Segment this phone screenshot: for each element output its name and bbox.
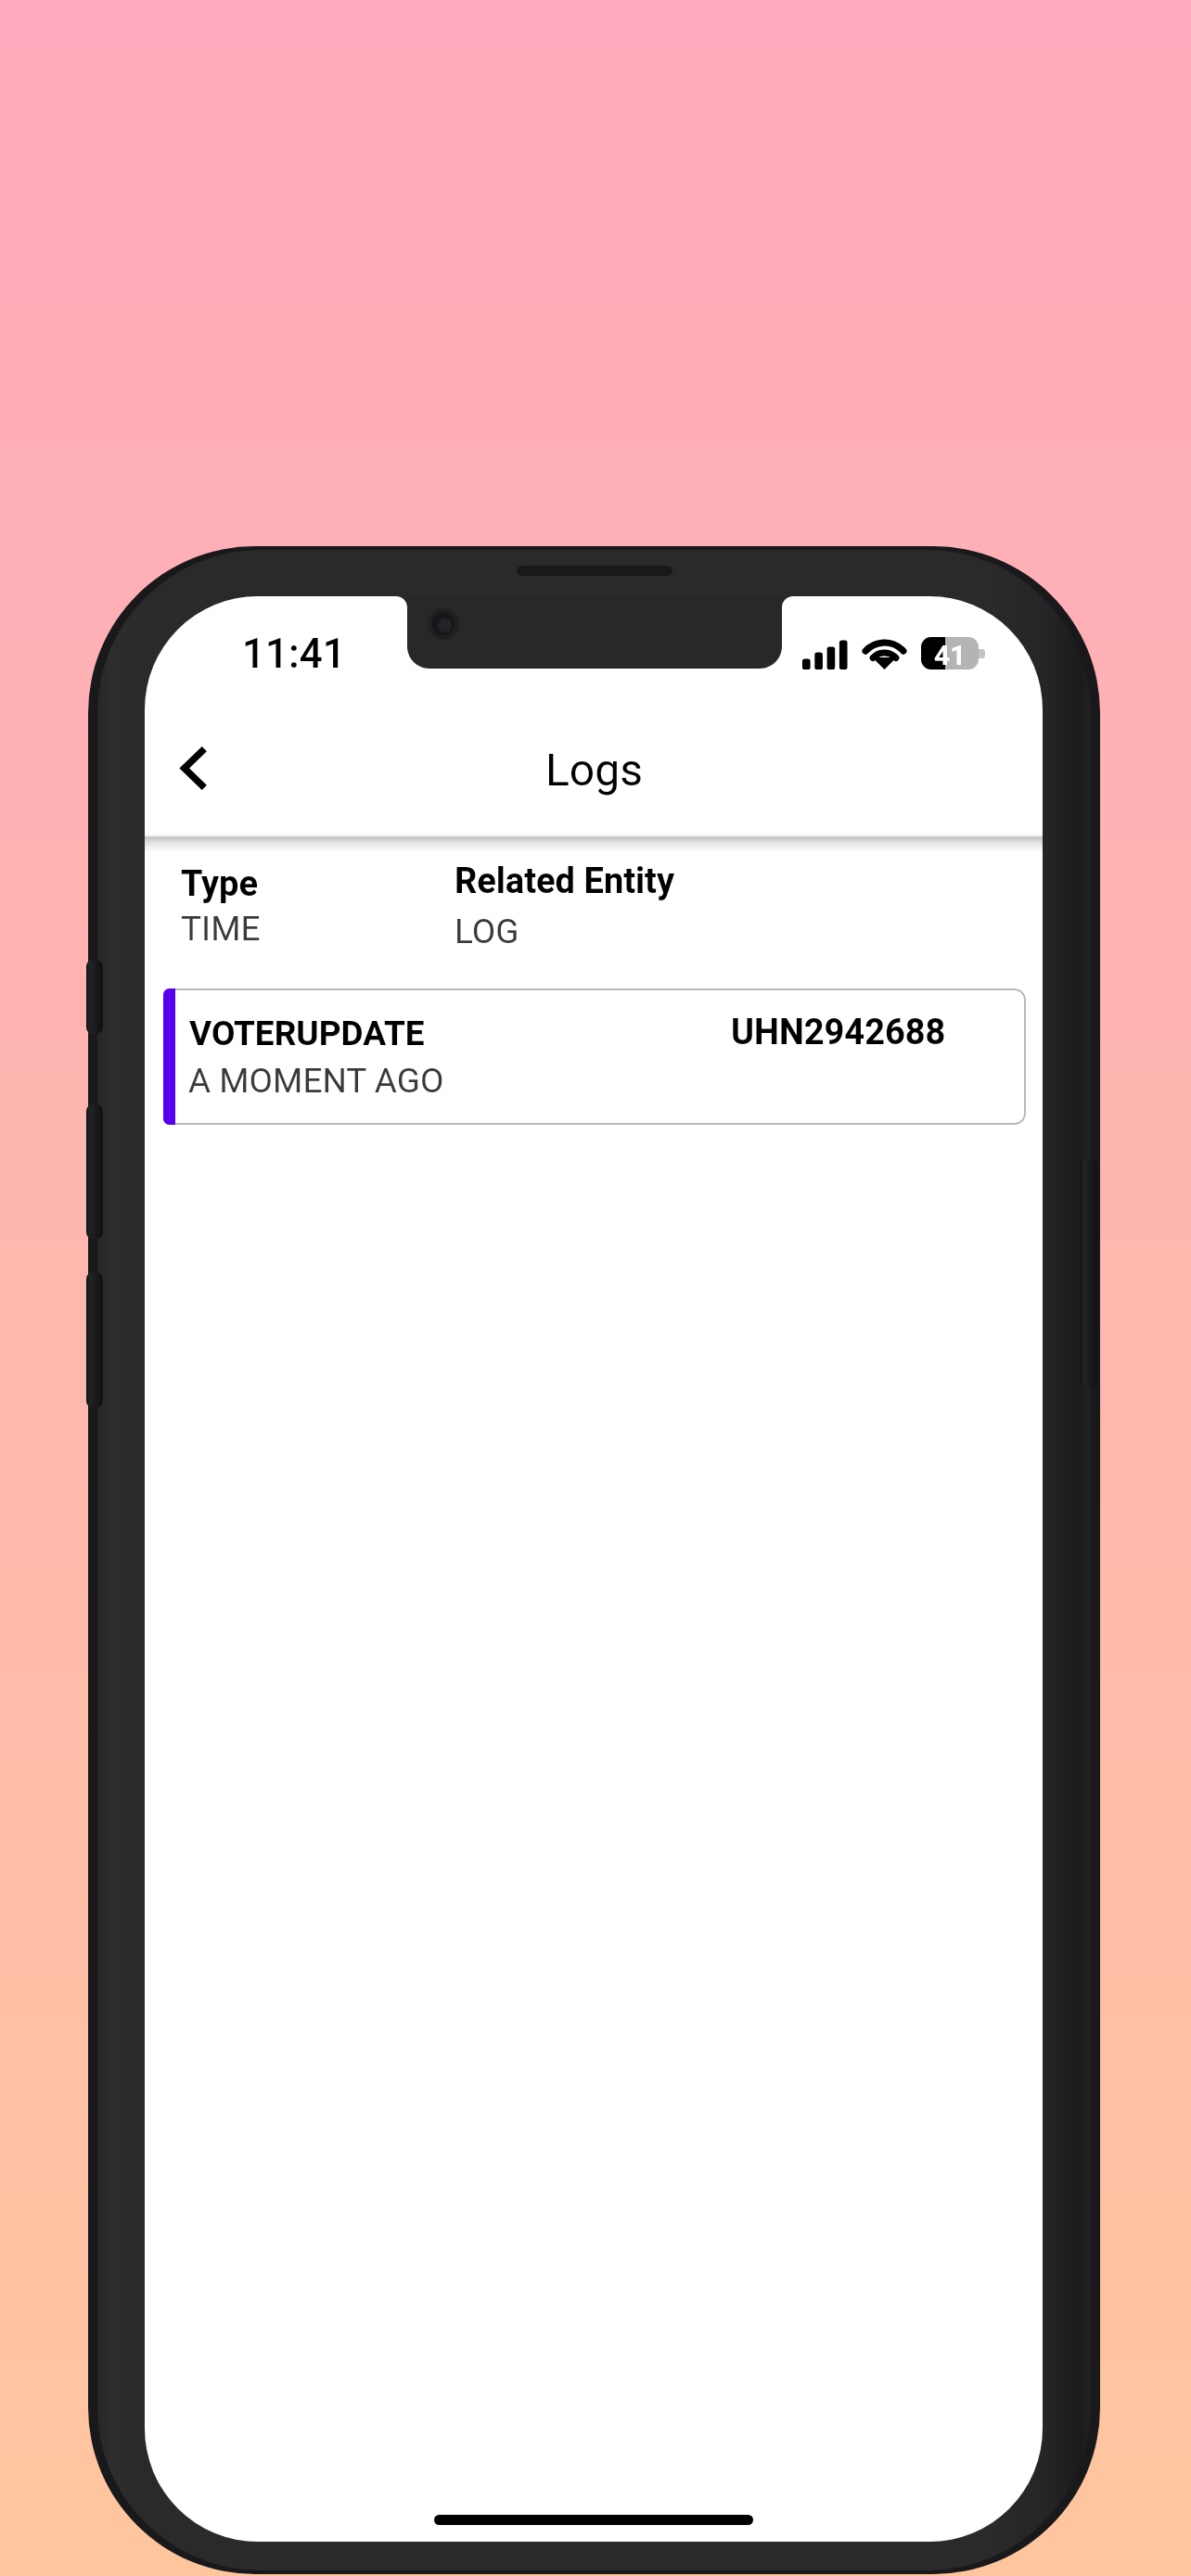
staticText: LOG (455, 912, 519, 951)
staticText: UHN2942688 (731, 1012, 946, 1053)
staticText: Logs (545, 744, 643, 796)
button[interactable]: Back (145, 718, 244, 818)
staticText: A MOMENT AGO (188, 1061, 444, 1101)
staticText: TIME (181, 909, 261, 949)
staticText: 11:41 (242, 630, 346, 678)
staticText: VOTERUPDATE (189, 1014, 425, 1053)
staticText: 41 (934, 639, 967, 671)
staticText: Type (181, 863, 259, 905)
staticText: Related Entity (455, 861, 675, 902)
button[interactable]: VOTERUPDATE (163, 988, 1026, 1125)
